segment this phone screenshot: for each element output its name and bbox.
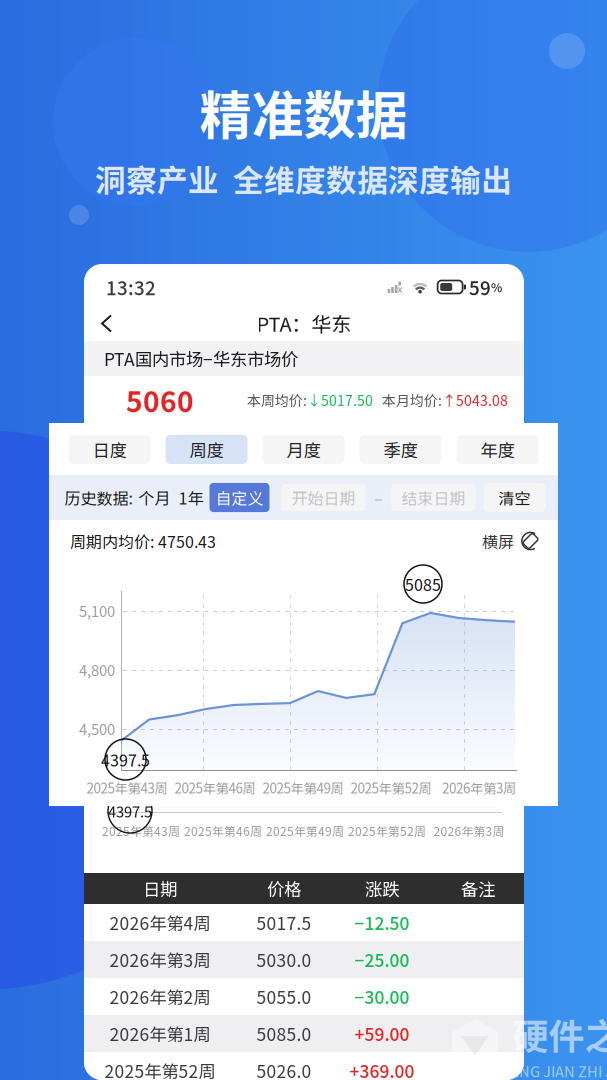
button[interactable]: 清空: [483, 483, 545, 512]
staticText: 2025年第46周: [184, 822, 262, 839]
staticText: 备注: [461, 876, 495, 901]
staticText: 2025年第43周: [102, 822, 180, 839]
button[interactable]: 自定义: [209, 483, 269, 512]
staticText: 59: [469, 273, 491, 300]
staticText: 5060: [126, 380, 194, 420]
staticText: 日度: [92, 437, 126, 462]
button[interactable]: Back: [84, 305, 127, 342]
staticText: +369.00: [349, 1058, 414, 1080]
staticText: 2025年第52周: [104, 1058, 215, 1080]
staticText: 2025年第49周: [266, 822, 344, 839]
staticText: 洞察产业 全维度数据深度输出: [95, 156, 512, 201]
staticText: 硬件之家: [512, 1008, 607, 1060]
staticText: 日期: [143, 876, 177, 901]
staticText: 精准数据: [199, 74, 407, 149]
staticText: 2026年第1周: [109, 1021, 210, 1046]
staticText: 5030.0: [256, 947, 311, 972]
staticText: 5017.5: [256, 910, 311, 935]
staticText: 2026年第4周: [109, 910, 210, 935]
button[interactable]: 结束日期: [391, 484, 475, 511]
staticText: 涨跌: [365, 876, 399, 901]
button[interactable]: 年度: [456, 435, 538, 464]
staticText: 清空: [498, 486, 530, 509]
staticText: 5055.0: [256, 984, 311, 1009]
staticText: 2025年第43周: [86, 778, 167, 797]
button[interactable]: 季度: [359, 435, 441, 464]
staticText: 周期内均价: 4750.43: [70, 529, 216, 553]
staticText: 周度: [189, 437, 223, 462]
staticText: 开始日期: [291, 486, 355, 509]
staticText: 5085: [405, 572, 441, 596]
staticText: 本周均价:: [247, 390, 307, 410]
staticText: 1年: [178, 486, 203, 509]
staticText: 2026年第3周: [442, 778, 516, 797]
staticText: 月度: [286, 437, 320, 462]
staticText: 2026年第2周: [109, 984, 210, 1009]
button[interactable]: Rotate to landscape: [521, 531, 540, 550]
staticText: PTA国内市场−华东市场价: [104, 346, 298, 371]
staticText: 季度: [383, 437, 417, 462]
button[interactable]: 周度: [165, 435, 247, 464]
staticText: 2025年第49周: [262, 778, 343, 797]
staticText: 横屏: [482, 529, 514, 553]
staticText: 2025年第46周: [174, 778, 255, 797]
staticText: −25.00: [354, 947, 409, 972]
staticText: ↓: [307, 390, 321, 410]
staticText: 5,100: [79, 600, 115, 621]
staticText: −30.00: [354, 984, 409, 1009]
staticText: 本月均价:: [382, 390, 442, 410]
staticText: ↑: [442, 390, 456, 410]
staticText: 5043.08: [456, 390, 508, 410]
staticText: 4,800: [79, 659, 115, 680]
button[interactable]: 日度: [68, 435, 150, 464]
staticText: PTA：华东: [256, 308, 351, 337]
staticText: 13:32: [106, 273, 156, 300]
staticText: YING JIAN ZHI JIA.COM: [507, 1060, 607, 1080]
staticText: 4,500: [79, 718, 115, 739]
button[interactable]: 开始日期: [281, 484, 365, 511]
staticText: 历史数据:: [64, 486, 132, 509]
staticText: 个月: [138, 486, 170, 509]
staticText: 4397.5: [101, 748, 150, 771]
staticText: 年度: [480, 437, 514, 462]
button[interactable]: 月度: [262, 435, 344, 464]
staticText: 5026.0: [256, 1058, 311, 1080]
staticText: 价格: [267, 876, 301, 901]
staticText: 5017.50: [321, 390, 373, 410]
staticText: –: [374, 486, 383, 509]
staticText: 5085.0: [256, 1021, 311, 1046]
staticText: +59.00: [354, 1021, 409, 1046]
staticText: 2025年第52周: [348, 822, 426, 839]
staticText: 2026年第3周: [109, 947, 210, 972]
staticText: 4397.5: [108, 800, 152, 822]
staticText: 结束日期: [401, 486, 465, 509]
staticText: 自定义: [215, 486, 263, 509]
staticText: 2025年第52周: [350, 778, 431, 797]
staticText: −12.50: [354, 910, 409, 935]
staticText: 2026年第3周: [433, 822, 504, 839]
staticText: %: [491, 278, 502, 296]
